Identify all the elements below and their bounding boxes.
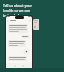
button[interactable]: Tell us about your (3, 3, 61, 18)
button[interactable] (22, 36, 29, 37)
button[interactable] (9, 25, 27, 32)
button[interactable]: Attach (13, 64, 17, 68)
button[interactable] (9, 41, 25, 46)
button[interactable] (9, 57, 26, 60)
staticText: Tell us about your (3, 3, 32, 8)
button[interactable]: Back (7, 20, 9, 22)
button[interactable]: Back (6, 16, 32, 70)
staticText: health so we can (3, 8, 31, 13)
staticText: better help you (3, 13, 28, 18)
button[interactable]: Send (21, 64, 25, 68)
button[interactable] (33, 19, 39, 30)
